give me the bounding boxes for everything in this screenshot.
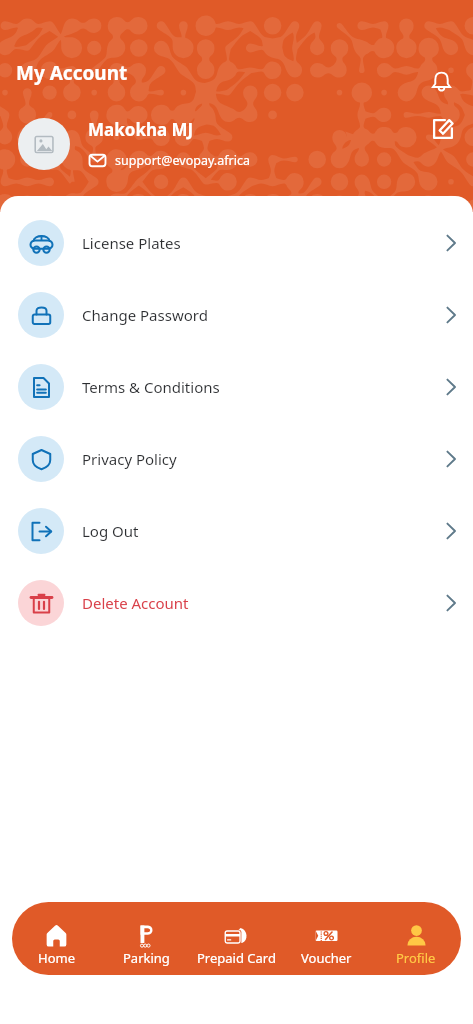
- button[interactable]: Privacy Policy: [0, 423, 473, 495]
- button[interactable]: Delete Account: [0, 567, 473, 639]
- staticText: Parking: [123, 949, 170, 967]
- button[interactable]: Profile: [371, 902, 461, 975]
- staticText: Profile: [396, 949, 436, 967]
- button[interactable]: Log Out: [0, 495, 473, 567]
- staticText: Terms & Conditions: [82, 377, 220, 397]
- staticText: support@evopay.africa: [115, 152, 250, 169]
- button[interactable]: License Plates: [0, 207, 473, 279]
- staticText: License Plates: [82, 233, 181, 253]
- button[interactable]: Terms & Conditions: [0, 351, 473, 423]
- button[interactable]: Change Password: [0, 279, 473, 351]
- staticText: Log Out: [82, 521, 139, 541]
- staticText: Delete Account: [82, 593, 189, 613]
- staticText: Change Password: [82, 305, 208, 325]
- staticText: Voucher: [301, 949, 352, 967]
- button[interactable]: Edit profile: [423, 109, 463, 149]
- staticText: Prepaid Card: [197, 949, 276, 967]
- staticText: Makokha MJ: [88, 118, 194, 141]
- button[interactable]: Parking: [101, 902, 191, 975]
- button[interactable]: Voucher: [281, 902, 371, 975]
- button[interactable]: Prepaid Card: [191, 902, 281, 975]
- button[interactable]: Home: [12, 902, 101, 975]
- staticText: My Account: [16, 60, 128, 86]
- staticText: Home: [38, 949, 75, 967]
- staticText: Privacy Policy: [82, 449, 177, 469]
- button[interactable]: Notifications: [421, 61, 461, 101]
